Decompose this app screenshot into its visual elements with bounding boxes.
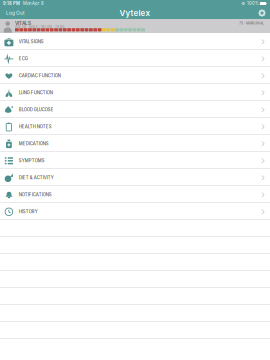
staticText: HEALTH NOTES [19,124,52,129]
button[interactable]: HEALTH NOTES [0,118,270,135]
staticText: BLOOD GLUCOSE [19,107,54,112]
button[interactable]: VITAL SIGNS [0,33,270,50]
staticText: DIET & ACTIVITY [19,175,54,180]
button[interactable]: CARDIAC FUNCTION [0,67,270,84]
staticText: ECG [19,56,28,61]
staticText: HISTORY [19,209,38,214]
button[interactable]: LUNG FUNCTION [0,84,270,101]
staticText: VITALS [15,20,31,26]
staticText: NOTIFICATIONS [19,192,52,197]
staticText: 75 · MARGINAL [239,21,264,25]
button[interactable]: ECG [0,50,270,67]
staticText: Vytelex [119,8,150,18]
staticText: CARDIAC FUNCTION [19,73,61,78]
button[interactable]: Log Out [0,7,31,19]
button[interactable]: SYMPTOMS [0,152,270,169]
staticText: LUNG FUNCTION [19,90,53,95]
button[interactable]: BLOOD GLUCOSE [0,101,270,118]
button[interactable]: NOTIFICATIONS [0,186,270,203]
staticText: MEDICATIONS [19,141,49,146]
staticText: AGE 58 · MALE · 182 CM · 78 KG [15,25,64,29]
button[interactable]: DIET & ACTIVITY [0,169,270,186]
button[interactable]: MEDICATIONS [0,135,270,152]
button[interactable]: Settings [254,7,270,19]
staticText: VITAL SIGNS [19,39,44,44]
button[interactable]: HISTORY [0,203,270,220]
staticText: Log Out [6,10,25,16]
staticText: 100% [246,1,260,6]
staticText: Mon Apr 8 [20,1,44,6]
staticText: SYMPTOMS [19,158,45,163]
staticText: 9:18 PM [3,1,20,6]
